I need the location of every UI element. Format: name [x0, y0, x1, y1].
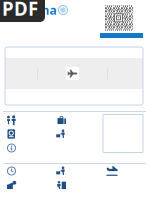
- button[interactable]: Baggage: [57, 113, 103, 127]
- button[interactable]: Check in: [56, 127, 102, 141]
- button[interactable]: Checked bags: [7, 178, 53, 192]
- button[interactable]: Flight information: [7, 141, 53, 155]
- staticText: na: [41, 2, 56, 18]
- button[interactable]: PDF: [0, 0, 45, 22]
- button[interactable]: Gate: [57, 178, 103, 192]
- staticText: PDF: [2, 0, 38, 21]
- button[interactable]: Schedule: [7, 164, 53, 178]
- button[interactable]: Travel documents: [7, 127, 53, 141]
- button[interactable]: Boarding: [56, 164, 102, 178]
- button[interactable]: Passengers: [7, 113, 53, 127]
